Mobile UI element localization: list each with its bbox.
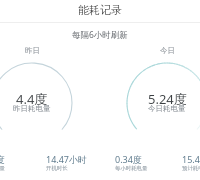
button[interactable]: 0.34度 (115, 153, 181, 176)
staticText: 4.4度 (16, 90, 48, 108)
staticText: 预计耗电量 (182, 165, 200, 172)
button[interactable]: 昨日 (0, 46, 67, 55)
staticText: 昨日耗电量 (13, 104, 51, 113)
button[interactable]: 5.24度 (0, 153, 44, 176)
button[interactable]: 14.47小时 (46, 153, 112, 176)
staticText: 15.4度 (182, 153, 200, 165)
staticText: 5.24度 (148, 90, 187, 108)
staticText: 今日耗电量 (148, 104, 186, 113)
staticText: 今日 (160, 46, 175, 55)
staticText: 每隔6小时刷新 (72, 29, 128, 41)
staticText: 5.24度 (0, 153, 5, 165)
staticText: 能耗记录 (78, 3, 122, 17)
staticText: 0.34度 (115, 153, 142, 165)
staticText: 每小时耗电量 (115, 165, 148, 172)
staticText: 14.47小时 (46, 153, 88, 165)
button[interactable]: 今日 (132, 46, 200, 55)
staticText: 开机时长 (46, 165, 68, 172)
staticText: 昨日 (25, 46, 40, 55)
button[interactable]: 15.4度 (182, 153, 200, 176)
staticText: 今日耗电量 (0, 165, 5, 172)
